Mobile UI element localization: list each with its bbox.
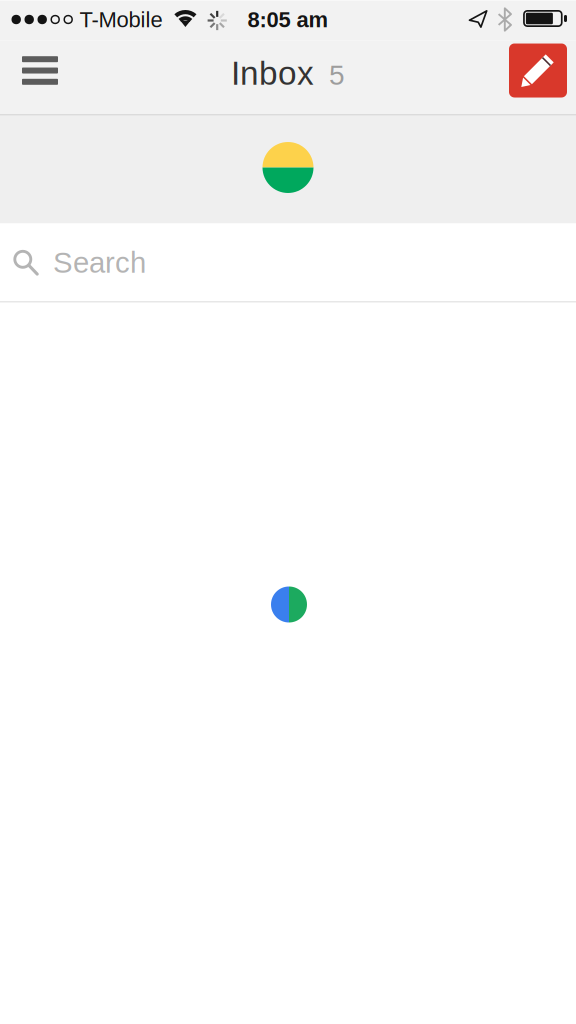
button[interactable]: Menu: [13, 43, 67, 97]
staticText: 5: [329, 59, 345, 91]
button[interactable]: Search: [0, 223, 576, 301]
staticText: 8:05 am: [247, 7, 328, 32]
staticText: Inbox: [231, 54, 314, 92]
button[interactable]: Compose: [509, 43, 567, 97]
staticText: Search: [53, 246, 146, 279]
staticText: T-Mobile: [79, 7, 162, 32]
